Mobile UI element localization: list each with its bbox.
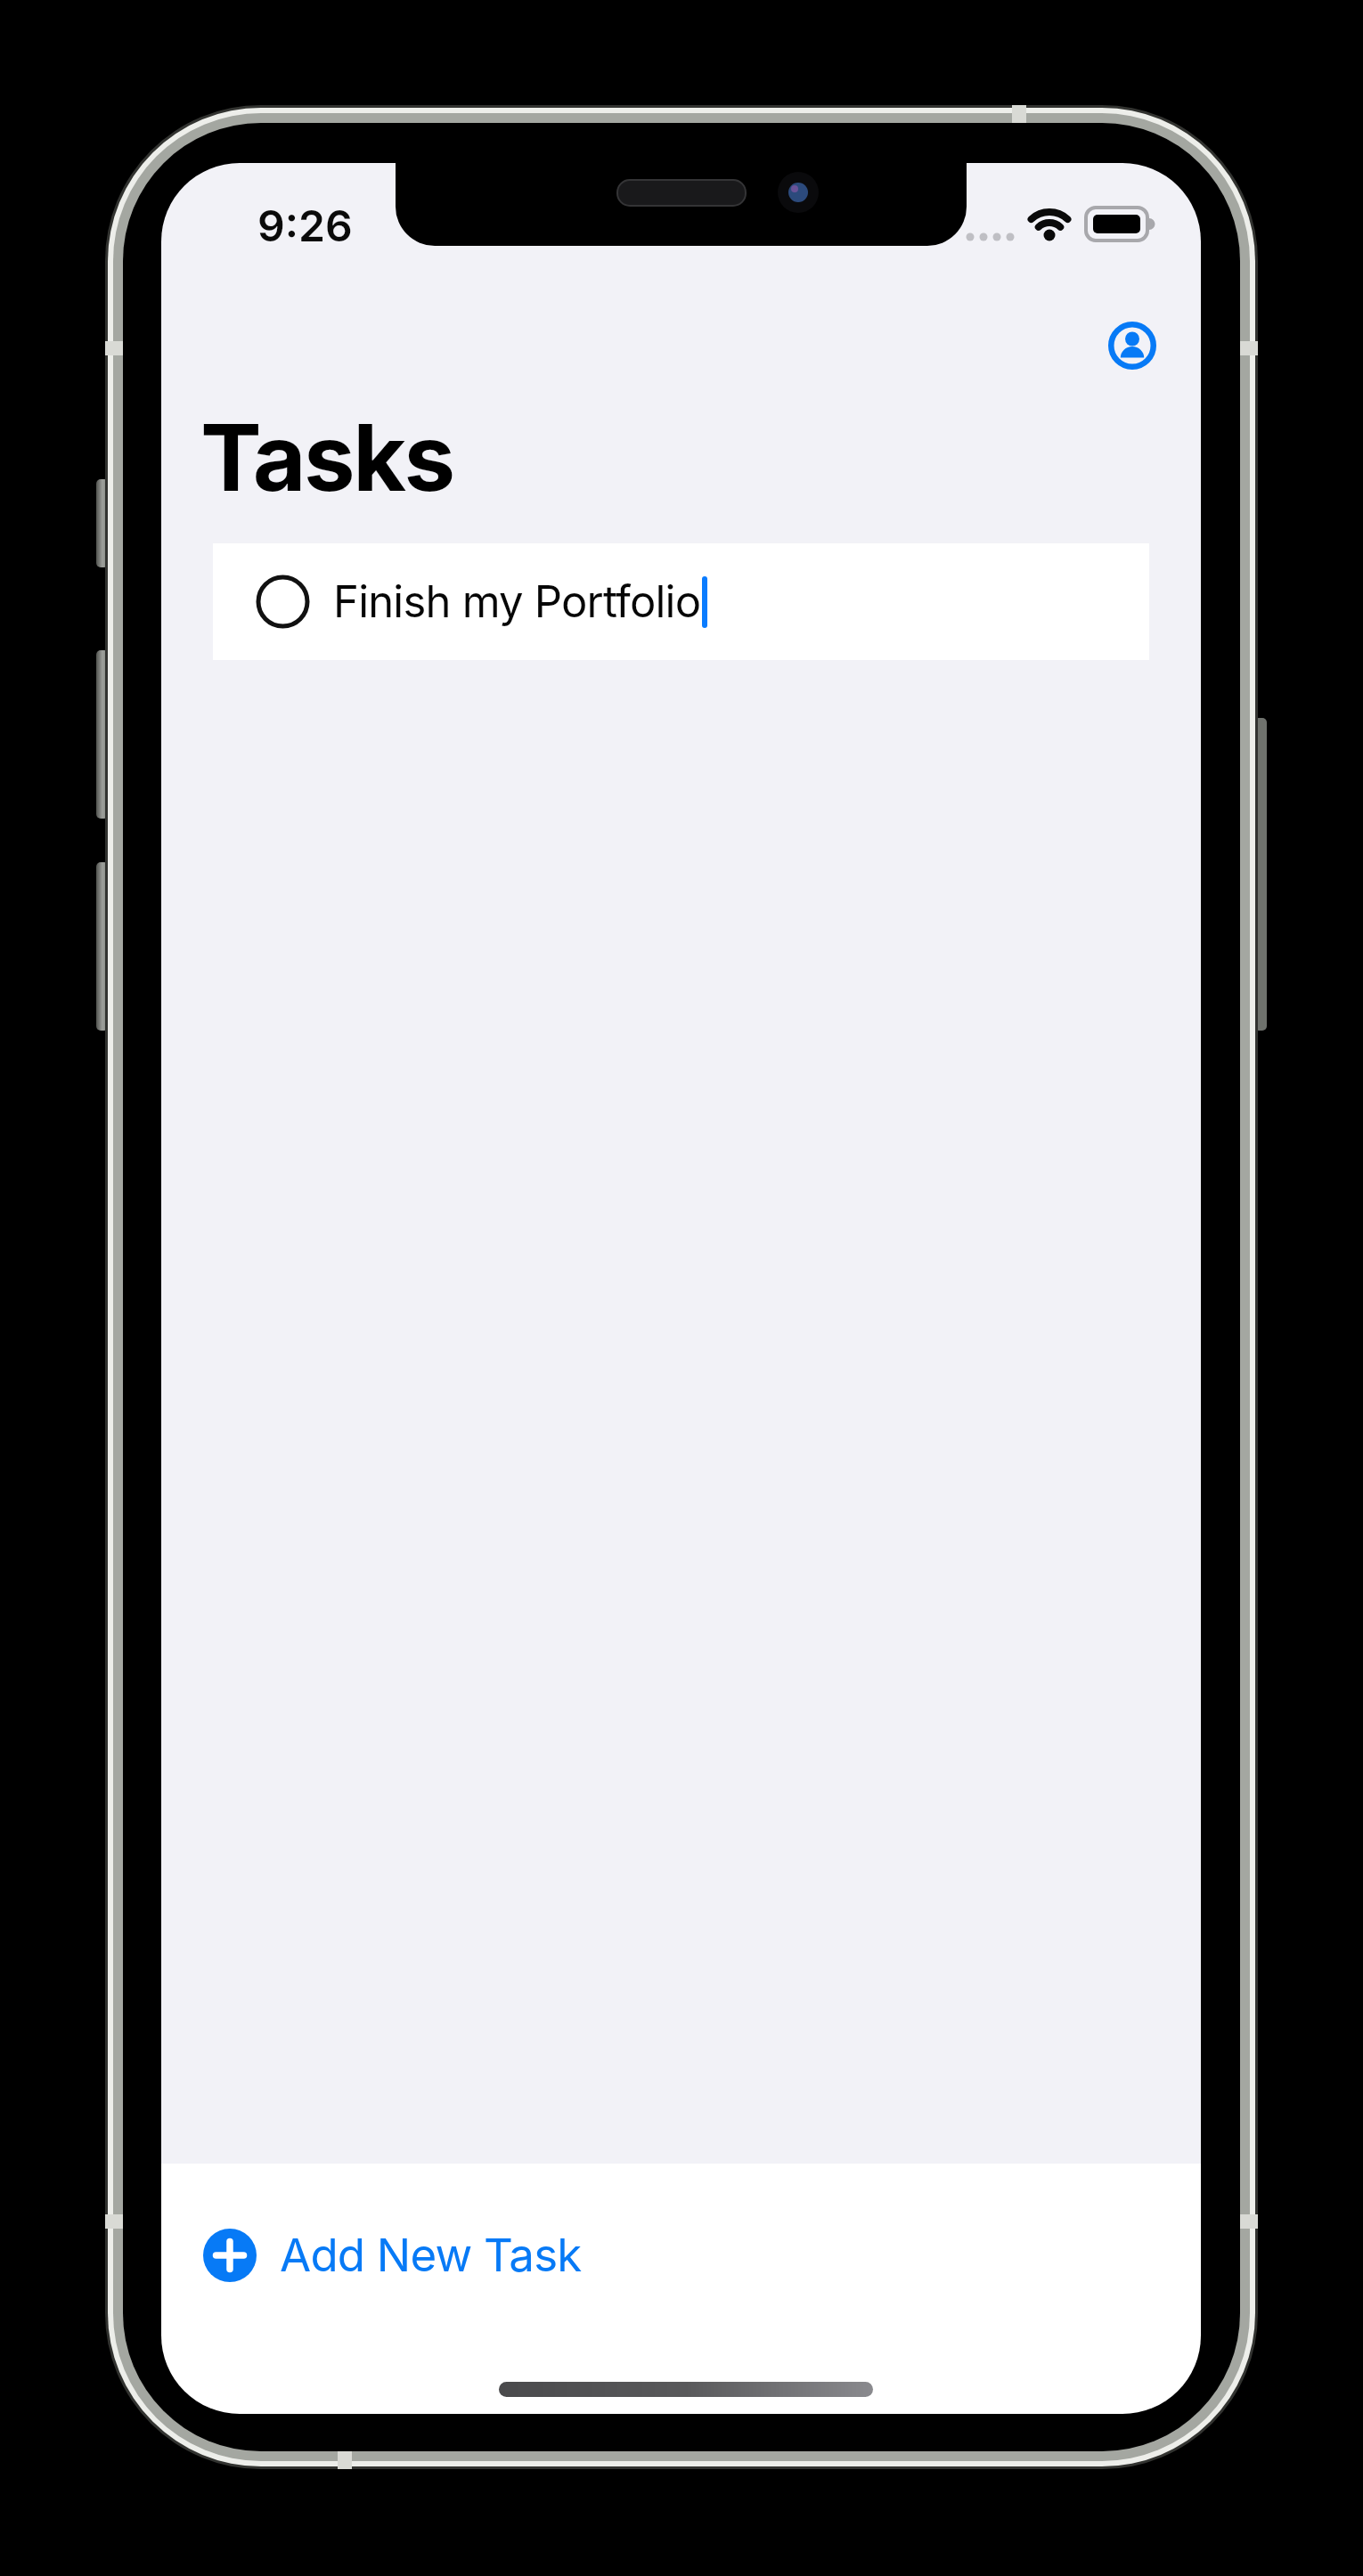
button[interactable] (1103, 316, 1162, 375)
staticText: 9:26 (257, 200, 353, 251)
staticText: Add New Task (280, 2228, 582, 2283)
button[interactable]: Finish my Portfolio (213, 543, 1149, 660)
staticText: Tasks (200, 402, 453, 513)
button[interactable]: Add New Task (203, 2223, 595, 2287)
staticText: Finish my Portfolio (333, 575, 701, 628)
